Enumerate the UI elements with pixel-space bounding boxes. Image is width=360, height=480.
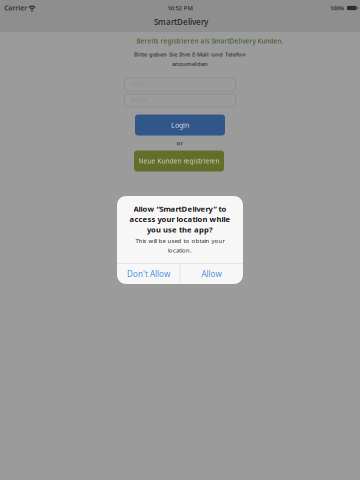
staticText: Carrier xyxy=(4,3,27,13)
staticText: location. xyxy=(168,246,192,254)
staticText: SmartDelivery xyxy=(154,17,208,27)
staticText: 100% xyxy=(330,4,344,12)
staticText: Bitte geben Sie Ihre E-Mail und Telefon xyxy=(134,50,246,58)
staticText: Neue Kunden registrieren xyxy=(138,157,219,165)
button[interactable]: Neue Kunden registrieren xyxy=(134,150,224,171)
button[interactable]: Bereits registrieren als SmartDelivery K… xyxy=(136,37,283,45)
button[interactable]: Don't Allow xyxy=(117,264,180,284)
staticText: access your location while xyxy=(129,214,230,224)
staticText: Allow xyxy=(201,268,221,279)
staticText: Don't Allow xyxy=(127,268,170,279)
staticText: Bereits registrieren als SmartDelivery K… xyxy=(136,37,283,45)
staticText: Login xyxy=(171,120,189,130)
button[interactable]: Allow xyxy=(180,264,243,284)
button[interactable]: Login xyxy=(135,114,225,135)
staticText: This will be used to obtain your xyxy=(135,237,224,245)
staticText: or xyxy=(176,139,183,147)
staticText: anzumelden xyxy=(172,60,208,68)
staticText: you use the app? xyxy=(147,224,213,235)
staticText: Allow “SmartDelivery” to xyxy=(133,204,226,214)
staticText: 10:52 PM xyxy=(167,4,192,12)
